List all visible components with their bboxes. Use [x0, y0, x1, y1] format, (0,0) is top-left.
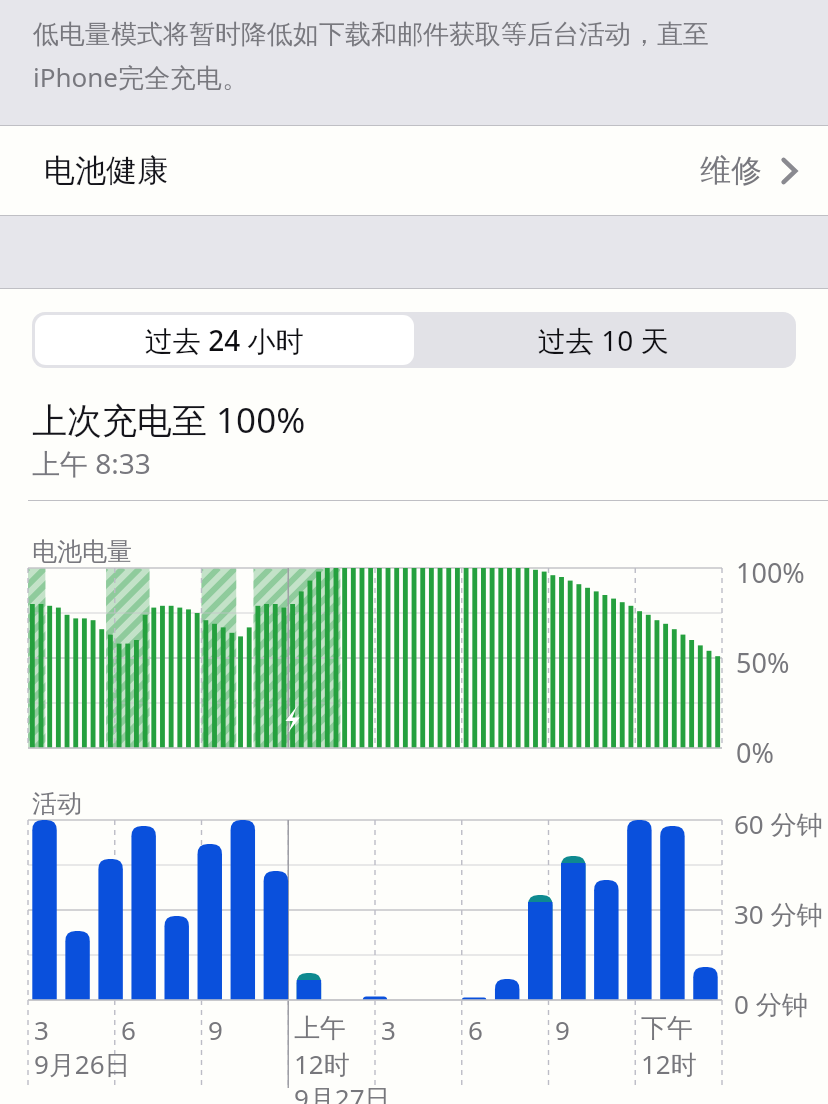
staticText: 100% [736, 554, 805, 591]
staticText: 上午 [294, 1012, 346, 1045]
staticText: 12时 [294, 1046, 350, 1082]
staticText: 9月27日 [294, 1080, 391, 1104]
staticText: iPhone完全充电。 [33, 59, 248, 95]
staticText: 9月26日 [34, 1046, 131, 1082]
staticText: 活动 [32, 788, 82, 819]
staticText: 60 分钟 [734, 806, 823, 842]
staticText: 上次充电至 100% [32, 396, 306, 444]
staticText: 电池健康 [44, 151, 168, 190]
staticText: 低电量模式将暂时降低如下载和邮件获取等后台活动，直至 [33, 18, 709, 51]
other: 电池健康详情 [780, 155, 798, 187]
staticText: 过去 10 天 [538, 321, 669, 359]
staticText: 电池电量 [32, 536, 132, 567]
staticText: 3 [34, 1012, 49, 1047]
staticText: 50% [736, 644, 790, 681]
staticText: 维修 [700, 151, 762, 190]
button[interactable]: 电池健康 [0, 126, 828, 215]
staticText: 9 [555, 1012, 570, 1047]
staticText: 上午 8:33 [32, 444, 151, 482]
staticText: 6 [468, 1012, 483, 1047]
staticText: 3 [381, 1012, 396, 1047]
button[interactable]: 过去 24 小时 [35, 315, 414, 365]
staticText: 6 [121, 1012, 136, 1047]
button[interactable]: 过去 10 天 [414, 315, 793, 365]
staticText: 0% [736, 734, 774, 771]
staticText: 30 分钟 [734, 896, 823, 932]
staticText: 下午 [641, 1012, 693, 1045]
staticText: 9 [208, 1012, 223, 1047]
staticText: 0 分钟 [734, 986, 808, 1022]
staticText: 过去 24 小时 [145, 321, 304, 359]
staticText: 12时 [641, 1046, 697, 1082]
